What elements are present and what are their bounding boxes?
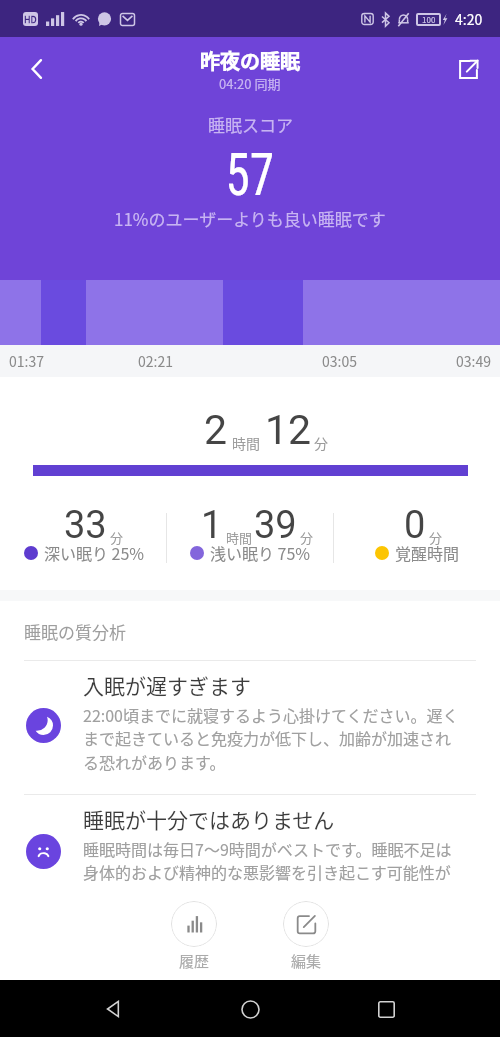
button[interactable]: 入眠が遅すぎます — [0, 601, 500, 705]
staticText: 分 — [300, 528, 314, 547]
button[interactable]: 睡眠が十分ではありません — [0, 601, 500, 681]
staticText: 100 — [422, 14, 436, 26]
staticText: 22:00頃までに就寝するよう心掛けてください。遅くまで起きていると免疫力が低下… — [83, 703, 461, 774]
staticText: HD — [24, 13, 37, 26]
staticText: 時間 — [232, 433, 260, 453]
staticText: 0 — [404, 503, 426, 548]
staticText: 睡眠の質分析 — [24, 619, 126, 644]
staticText: 睡眠時間は毎日7〜9時間がベストです。睡眠不足は身体的および精神的な悪影響を引き… — [83, 837, 461, 884]
staticText: 時間 — [226, 528, 253, 547]
staticText: 03:05 — [322, 351, 357, 371]
staticText: 02:21 — [138, 351, 173, 371]
staticText: 深い眠り 25% — [44, 541, 145, 564]
staticText: 11%のユーザーよりも良い睡眠です — [114, 206, 386, 231]
staticText: 浅い眠り 75% — [210, 541, 311, 564]
staticText: 睡眠スコア — [208, 112, 293, 137]
button[interactable]: 編集 — [283, 901, 329, 972]
staticText: 分 — [110, 528, 124, 547]
button[interactable]: Back — [18, 50, 56, 88]
staticText: 分 — [429, 528, 443, 547]
staticText: 編集 — [291, 950, 322, 972]
staticText: 39 — [254, 503, 297, 548]
staticText: 57 — [225, 139, 275, 209]
staticText: 12 — [265, 406, 312, 454]
button[interactable]: Home — [228, 987, 272, 1031]
staticText: 4:20 — [455, 9, 483, 29]
staticText: 分 — [314, 433, 328, 453]
staticText: 04:20 同期 — [219, 74, 281, 93]
staticText: 2 — [204, 406, 228, 454]
staticText: 03:49 — [456, 351, 491, 371]
staticText: 睡眠が十分ではありません — [83, 804, 335, 834]
staticText: 01:37 — [9, 351, 44, 371]
button[interactable]: 履歴 — [171, 901, 217, 972]
button[interactable]: Recents — [364, 987, 408, 1031]
button[interactable]: Back — [92, 987, 136, 1031]
button[interactable]: Share — [449, 50, 487, 88]
staticText: 1 — [201, 503, 223, 548]
staticText: 昨夜の睡眠 — [200, 46, 300, 75]
staticText: 履歴 — [179, 950, 210, 972]
staticText: 入眠が遅すぎます — [83, 670, 251, 700]
staticText: 覚醒時間 — [395, 541, 460, 564]
staticText: 33 — [64, 503, 107, 548]
